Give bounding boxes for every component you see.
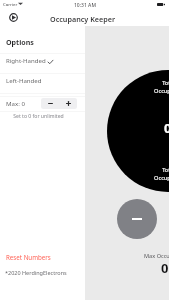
staticText: Total Occupancy: [154, 166, 169, 181]
staticText: Max Occupancy: [144, 252, 169, 260]
button[interactable]: Reset Numbers: [0, 250, 85, 263]
staticText: Carrier: [3, 1, 18, 7]
button[interactable]: Add occupant: [107, 70, 169, 192]
staticText: Max: 0: [6, 99, 25, 107]
staticText: Total Occupancy: [154, 79, 169, 94]
staticText: Left-Handed: [6, 76, 42, 84]
staticText: Options: [6, 37, 34, 47]
staticText: 0: [164, 119, 169, 137]
staticText: 0: [161, 259, 169, 277]
staticText: *2020 HerdingElectrons: [5, 269, 67, 276]
button[interactable]: Remove occupant: [117, 199, 157, 239]
staticText: Set to 0 for unlimited: [0, 113, 77, 120]
button[interactable]: Left-Handed: [0, 74, 85, 93]
button[interactable]: Decrease maximum: [41, 98, 59, 109]
staticText: 10:31 AM: [74, 2, 96, 9]
staticText: Occupancy Keeper: [50, 14, 116, 24]
staticText: Reset Numbers: [6, 253, 51, 261]
button[interactable]: About: [9, 13, 18, 22]
button[interactable]: Increase maximum: [59, 98, 77, 109]
button[interactable]: Right-Handed: [0, 54, 85, 73]
staticText: Right-Handed: [6, 56, 46, 64]
